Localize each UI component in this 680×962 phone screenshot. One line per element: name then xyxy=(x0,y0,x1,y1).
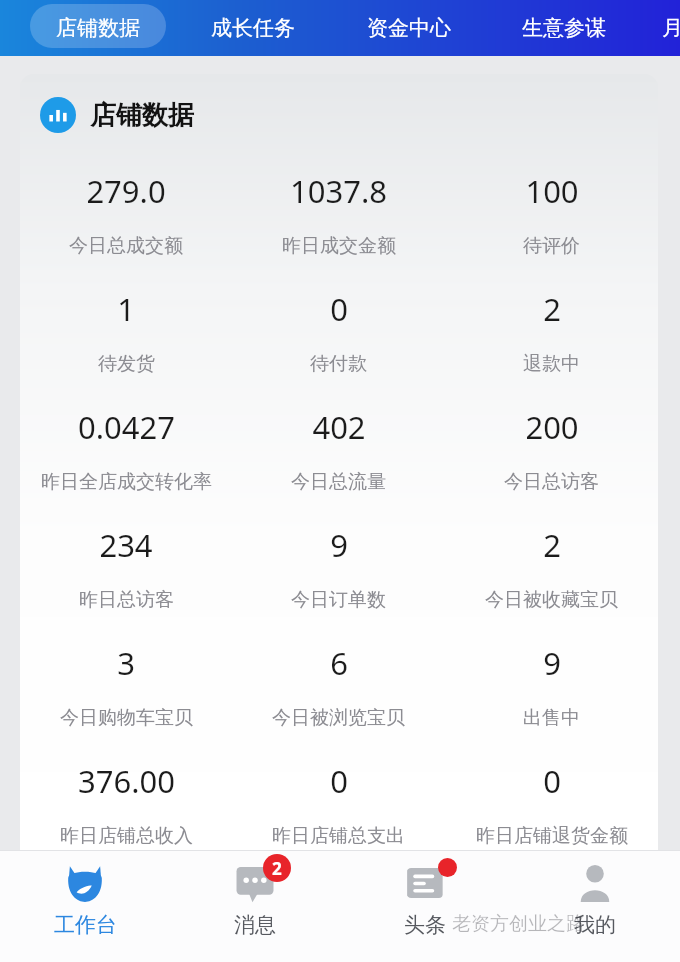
staticText: 今日购物车宝贝 xyxy=(60,706,193,730)
button[interactable]: 2 xyxy=(445,510,658,628)
button[interactable]: 0.0427 xyxy=(20,392,232,510)
button[interactable]: 生意参谋 xyxy=(499,0,629,56)
staticText: 昨日店铺总收入 xyxy=(60,824,193,848)
staticText: 279.0 xyxy=(86,170,166,212)
staticText: 今日被浏览宝贝 xyxy=(272,706,405,730)
staticText: 0 xyxy=(330,760,348,802)
button[interactable]: 234 xyxy=(20,510,232,628)
staticText: 待发货 xyxy=(98,352,155,376)
button[interactable]: 月 xyxy=(652,0,680,56)
button[interactable]: 2 xyxy=(445,274,658,392)
staticText: 昨日总访客 xyxy=(79,588,174,612)
button[interactable]: 9 xyxy=(445,628,658,746)
staticText: 3 xyxy=(117,642,135,684)
button[interactable]: 279.0 xyxy=(20,156,232,274)
staticText: 200 xyxy=(525,406,579,448)
button[interactable]: 0 xyxy=(445,746,658,850)
staticText: 昨日成交金额 xyxy=(282,234,396,258)
staticText: 店铺数据 xyxy=(56,15,140,41)
staticText: 退款中 xyxy=(523,352,580,376)
button[interactable]: 200 xyxy=(445,392,658,510)
button[interactable]: 6 xyxy=(232,628,445,746)
staticText: 月 xyxy=(662,15,680,41)
button[interactable]: 店铺数据 xyxy=(20,74,658,156)
button[interactable]: 100 xyxy=(445,156,658,274)
staticText: 今日总成交额 xyxy=(69,234,183,258)
staticText: 1037.8 xyxy=(290,170,387,212)
button[interactable]: 我的 xyxy=(510,850,680,962)
button[interactable]: 1037.8 xyxy=(232,156,445,274)
button[interactable]: 0 xyxy=(232,274,445,392)
button[interactable]: 头条 xyxy=(340,850,510,962)
staticText: 9 xyxy=(330,524,348,566)
staticText: 100 xyxy=(525,170,579,212)
staticText: 我的 xyxy=(574,912,616,938)
staticText: 店铺数据 xyxy=(90,99,194,132)
button[interactable]: 3 xyxy=(20,628,232,746)
staticText: 9 xyxy=(543,642,561,684)
button[interactable]: 资金中心 xyxy=(344,0,474,56)
staticText: 2 xyxy=(272,857,282,880)
staticText: 消息 xyxy=(234,912,276,938)
staticText: 376.00 xyxy=(78,760,175,802)
staticText: 1 xyxy=(117,288,135,330)
staticText: 0 xyxy=(330,288,348,330)
button[interactable]: 消息 xyxy=(170,850,340,962)
staticText: 234 xyxy=(99,524,153,566)
staticText: 头条 xyxy=(404,912,446,938)
button[interactable]: 工作台 xyxy=(0,850,170,962)
staticText: 今日总访客 xyxy=(504,470,599,494)
staticText: 老资方创业之路 xyxy=(452,912,585,936)
staticText: 今日总流量 xyxy=(291,470,386,494)
button[interactable]: 9 xyxy=(232,510,445,628)
staticText: 402 xyxy=(312,406,366,448)
staticText: 待付款 xyxy=(310,352,367,376)
staticText: 2 xyxy=(543,288,561,330)
staticText: 待评价 xyxy=(523,234,580,258)
button[interactable]: 1 xyxy=(20,274,232,392)
staticText: 出售中 xyxy=(523,706,580,730)
staticText: 0.0427 xyxy=(78,406,175,448)
staticText: 今日被收藏宝贝 xyxy=(485,588,618,612)
staticText: 昨日店铺总支出 xyxy=(272,824,405,848)
staticText: 6 xyxy=(330,642,348,684)
staticText: 成长任务 xyxy=(211,15,295,41)
staticText: 资金中心 xyxy=(367,15,451,41)
staticText: 0 xyxy=(543,760,561,802)
staticText: 今日订单数 xyxy=(291,588,386,612)
staticText: 工作台 xyxy=(54,912,117,938)
staticText: 2 xyxy=(543,524,561,566)
staticText: 昨日店铺退货金额 xyxy=(476,824,628,848)
button[interactable]: 0 xyxy=(232,746,445,850)
staticText: 生意参谋 xyxy=(522,15,606,41)
button[interactable]: 376.00 xyxy=(20,746,232,850)
button[interactable]: 成长任务 xyxy=(188,0,318,56)
button[interactable]: 402 xyxy=(232,392,445,510)
staticText: 昨日全店成交转化率 xyxy=(41,470,212,494)
button[interactable]: 店铺数据 xyxy=(33,0,163,56)
